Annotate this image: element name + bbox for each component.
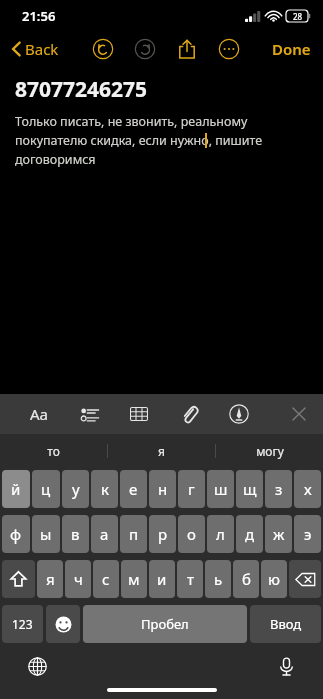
staticText: з	[275, 479, 283, 499]
staticText: с	[102, 569, 110, 589]
button[interactable]: е	[120, 470, 147, 508]
button[interactable]: ч	[65, 560, 91, 598]
button[interactable]: у	[62, 470, 89, 508]
staticText: к	[101, 479, 109, 499]
button[interactable]: Done	[270, 39, 313, 59]
button[interactable]: я	[108, 434, 215, 467]
staticText: 28	[293, 11, 303, 22]
staticText: Done	[272, 39, 311, 59]
staticText: у	[72, 479, 80, 499]
button[interactable]: ю	[261, 560, 287, 598]
button[interactable]: Attach	[176, 401, 202, 427]
staticText: щ	[243, 479, 257, 499]
button[interactable]: ш	[207, 470, 234, 508]
button[interactable]: 123	[2, 605, 43, 643]
button[interactable]: т	[177, 560, 203, 598]
staticText: ю	[268, 569, 280, 589]
staticText: могу	[256, 443, 284, 459]
staticText: ч	[74, 569, 83, 589]
staticText: б	[242, 569, 251, 589]
staticText: о	[187, 524, 196, 544]
button[interactable]: к	[91, 470, 118, 508]
button[interactable]: Share	[174, 36, 200, 62]
staticText: я	[158, 443, 165, 459]
button[interactable]: о	[178, 515, 205, 553]
staticText: я	[46, 569, 55, 589]
button[interactable]: п	[120, 515, 147, 553]
staticText: й	[11, 479, 21, 499]
button[interactable]: ь	[205, 560, 231, 598]
button[interactable]: Backspace	[289, 560, 321, 598]
staticText: л	[216, 524, 225, 544]
button[interactable]: э	[294, 515, 321, 553]
button[interactable]: ж	[265, 515, 292, 553]
staticText: 123	[12, 616, 33, 632]
staticText: ш	[214, 479, 228, 499]
staticText: и	[157, 569, 167, 589]
button[interactable]: Change language	[22, 651, 52, 681]
button[interactable]: щ	[236, 470, 263, 508]
staticText: 21:56	[22, 7, 56, 25]
button[interactable]: Text format	[26, 401, 52, 427]
button[interactable]: м	[121, 560, 147, 598]
button[interactable]: Пробел	[83, 605, 247, 643]
staticText: ь	[214, 569, 223, 589]
staticText: Пробел	[141, 615, 189, 633]
button[interactable]: г	[178, 470, 205, 508]
button[interactable]: ф	[2, 515, 30, 553]
button[interactable]: и	[149, 560, 175, 598]
staticText: в	[71, 524, 80, 544]
staticText: р	[158, 524, 168, 544]
staticText: х	[304, 479, 312, 499]
button[interactable]: Ввод	[250, 605, 321, 643]
staticText: ж	[273, 524, 285, 544]
button[interactable]: л	[207, 515, 234, 553]
staticText: д	[245, 524, 255, 544]
button[interactable]: Close keyboard	[285, 400, 313, 428]
button[interactable]: то	[0, 434, 107, 467]
button[interactable]: а	[91, 515, 118, 553]
staticText: е	[129, 479, 138, 499]
button[interactable]: н	[149, 470, 176, 508]
button[interactable]: Redo	[132, 36, 158, 62]
button[interactable]: могу	[216, 434, 323, 467]
button[interactable]: з	[265, 470, 292, 508]
staticText: п	[129, 524, 139, 544]
button[interactable]: р	[149, 515, 176, 553]
button[interactable]: Dictate	[271, 651, 301, 681]
button[interactable]: More	[216, 36, 242, 62]
staticText: м	[128, 569, 140, 589]
button[interactable]: Table	[126, 401, 152, 427]
staticText: г	[188, 479, 195, 499]
staticText: а	[100, 524, 109, 544]
staticText: н	[158, 479, 168, 499]
button[interactable]: в	[62, 515, 89, 553]
staticText: Ввод	[270, 615, 302, 633]
button[interactable]: я	[37, 560, 63, 598]
button[interactable]: Undo	[90, 36, 116, 62]
button[interactable]: Checklist	[76, 401, 102, 427]
staticText: ы	[40, 524, 52, 544]
staticText: э	[304, 524, 312, 544]
button[interactable]: д	[236, 515, 263, 553]
staticText: т	[187, 569, 194, 589]
button[interactable]: Back	[10, 39, 61, 59]
button[interactable]: Shift	[2, 560, 35, 598]
staticText: 87077246275	[15, 75, 148, 104]
staticText: то	[47, 443, 60, 459]
button[interactable]: Emoji	[46, 605, 80, 643]
button[interactable]: ц	[32, 470, 60, 508]
staticText: ф	[10, 524, 22, 544]
staticText: Back	[25, 39, 59, 59]
button[interactable]: х	[294, 470, 321, 508]
button[interactable]: ы	[32, 515, 60, 553]
button[interactable]: с	[93, 560, 119, 598]
button[interactable]: б	[233, 560, 259, 598]
staticText: ц	[41, 479, 51, 499]
staticText: Aa	[30, 404, 49, 424]
button[interactable]: Markup	[226, 401, 252, 427]
staticText: Только писать, не звонить, реальному пок…	[15, 113, 309, 168]
button[interactable]: й	[2, 470, 30, 508]
